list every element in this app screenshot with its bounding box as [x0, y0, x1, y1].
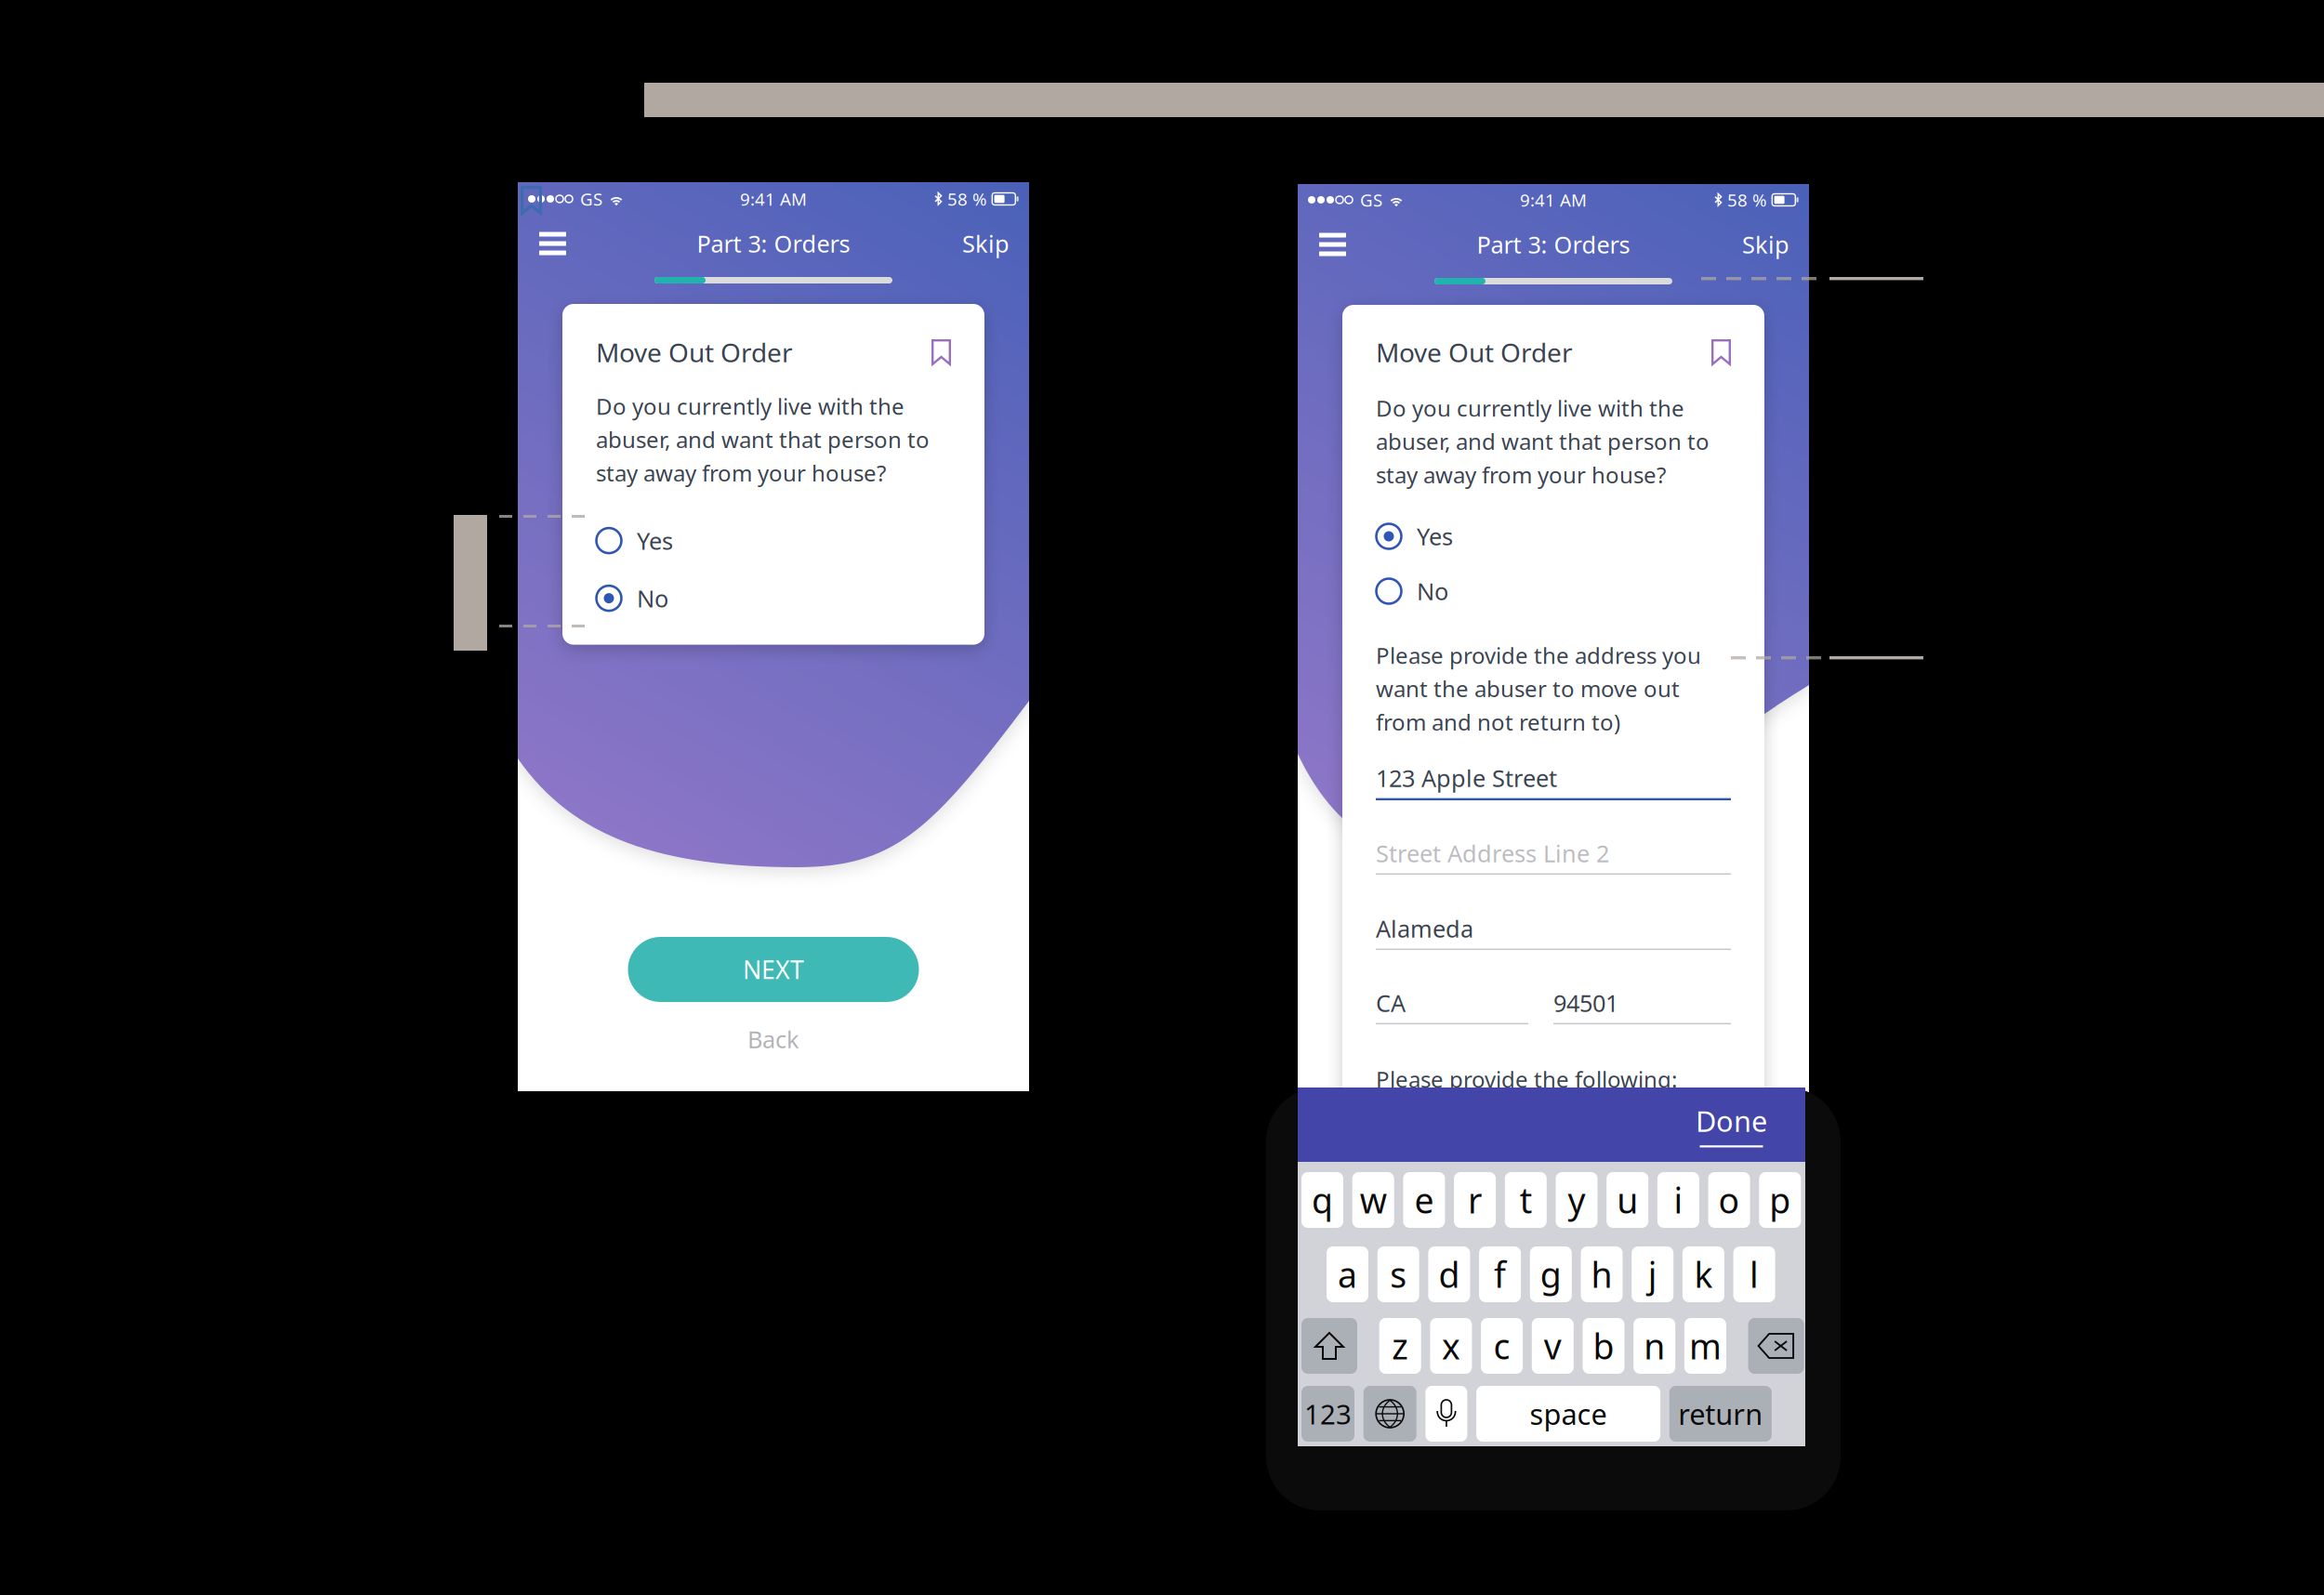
staticText: 94501 — [1553, 987, 1618, 1018]
button[interactable]: Shift — [1301, 1318, 1357, 1374]
staticText: No — [637, 583, 668, 614]
button[interactable]: v — [1532, 1318, 1574, 1374]
staticText: a — [1338, 1251, 1357, 1297]
staticText: Done — [1696, 1102, 1767, 1140]
button[interactable]: h — [1581, 1246, 1623, 1302]
button[interactable]: space — [1476, 1386, 1660, 1442]
button[interactable]: 123 — [1301, 1386, 1354, 1442]
staticText: w — [1360, 1177, 1387, 1223]
staticText: m — [1689, 1323, 1722, 1369]
button[interactable]: Skip — [957, 216, 1015, 271]
staticText: Skip — [1742, 229, 1789, 260]
staticText: return — [1678, 1395, 1763, 1433]
staticText: Do you currently live with the abuser, a… — [596, 391, 930, 488]
staticText: Please provide the address you want the … — [1376, 640, 1701, 737]
staticText: e — [1414, 1177, 1434, 1223]
staticText: 58 % — [1727, 188, 1767, 211]
button[interactable]: t — [1505, 1172, 1547, 1228]
staticText: Back — [747, 1023, 799, 1055]
button[interactable]: Next keyboard — [1363, 1386, 1416, 1442]
button[interactable]: Bookmark — [931, 339, 951, 365]
staticText: g — [1540, 1251, 1562, 1297]
staticText: u — [1617, 1177, 1638, 1223]
staticText: v — [1544, 1323, 1562, 1369]
button[interactable]: w — [1352, 1172, 1394, 1228]
button[interactable]: q — [1301, 1172, 1343, 1228]
staticText: 9:41 AM — [1520, 188, 1587, 211]
button[interactable]: Bookmark — [1711, 339, 1731, 365]
staticText: Move Out Order — [596, 335, 793, 370]
staticText: Move Out Order — [1376, 335, 1573, 370]
staticText: z — [1392, 1323, 1409, 1369]
button[interactable]: r — [1454, 1172, 1496, 1228]
button[interactable]: Delete — [1748, 1318, 1804, 1374]
button[interactable]: Menu — [1312, 221, 1353, 268]
staticText: s — [1390, 1251, 1407, 1297]
staticText: Part 3: Orders — [1477, 229, 1630, 260]
button[interactable]: Yes — [1376, 517, 1731, 556]
button[interactable]: n — [1633, 1318, 1675, 1374]
staticText: Street Address Line 2 — [1376, 837, 1609, 869]
staticText: Please provide the following: — [1376, 1064, 1677, 1094]
staticText: 123 Apple Street — [1376, 762, 1557, 793]
staticText: j — [1648, 1251, 1657, 1297]
button[interactable]: Done — [1696, 1102, 1805, 1147]
staticText: h — [1591, 1251, 1612, 1297]
button[interactable]: No — [596, 579, 951, 618]
staticText: b — [1593, 1323, 1614, 1369]
button[interactable]: g — [1530, 1246, 1572, 1302]
button[interactable]: k — [1682, 1246, 1724, 1302]
staticText: c — [1493, 1323, 1510, 1369]
staticText: space — [1530, 1395, 1607, 1433]
button[interactable]: p — [1759, 1172, 1801, 1228]
button[interactable]: y — [1556, 1172, 1598, 1228]
button[interactable]: d — [1428, 1246, 1470, 1302]
staticText: t — [1520, 1177, 1532, 1223]
button[interactable]: Skip — [1736, 217, 1795, 272]
staticText: No — [1417, 576, 1448, 607]
staticText: 123 — [1304, 1396, 1352, 1432]
button[interactable]: j — [1632, 1246, 1673, 1302]
staticText: q — [1312, 1177, 1333, 1223]
staticText: n — [1644, 1323, 1665, 1369]
staticText: f — [1494, 1251, 1506, 1297]
button[interactable]: return — [1669, 1386, 1772, 1442]
staticText: o — [1718, 1177, 1740, 1223]
button[interactable]: Yes — [596, 521, 951, 560]
button[interactable]: f — [1479, 1246, 1521, 1302]
button[interactable]: b — [1583, 1318, 1624, 1374]
staticText: Do you currently live with the abuser, a… — [1376, 393, 1710, 489]
staticText: l — [1750, 1251, 1759, 1297]
staticText: r — [1468, 1177, 1482, 1223]
staticText: GS — [1360, 188, 1382, 211]
button[interactable]: o — [1708, 1172, 1750, 1228]
button[interactable]: a — [1327, 1246, 1368, 1302]
staticText: Yes — [637, 525, 673, 556]
button[interactable]: s — [1377, 1246, 1419, 1302]
staticText: Yes — [1417, 521, 1453, 552]
staticText: d — [1438, 1251, 1460, 1297]
staticText: GS — [580, 187, 602, 210]
staticText: k — [1694, 1251, 1713, 1297]
button[interactable]: z — [1379, 1318, 1421, 1374]
button[interactable]: Back — [747, 1013, 799, 1065]
staticText: 9:41 AM — [740, 187, 807, 210]
staticText: i — [1674, 1177, 1683, 1223]
button[interactable]: m — [1684, 1318, 1726, 1374]
button[interactable]: Menu — [532, 220, 574, 267]
button[interactable]: c — [1481, 1318, 1523, 1374]
button[interactable]: No — [1376, 572, 1731, 611]
button[interactable]: x — [1430, 1318, 1472, 1374]
staticText: Skip — [962, 228, 1010, 259]
staticText: x — [1442, 1323, 1460, 1369]
staticText: Part 3: Orders — [697, 228, 850, 259]
button[interactable]: Dictate — [1425, 1386, 1467, 1442]
staticText: 58 % — [947, 187, 987, 210]
button[interactable]: u — [1607, 1172, 1648, 1228]
button[interactable]: i — [1657, 1172, 1699, 1228]
button[interactable]: NEXT — [628, 937, 919, 1002]
staticText: Alameda — [1376, 913, 1473, 944]
button[interactable]: l — [1733, 1246, 1775, 1302]
staticText: NEXT — [743, 953, 804, 986]
button[interactable]: e — [1403, 1172, 1445, 1228]
